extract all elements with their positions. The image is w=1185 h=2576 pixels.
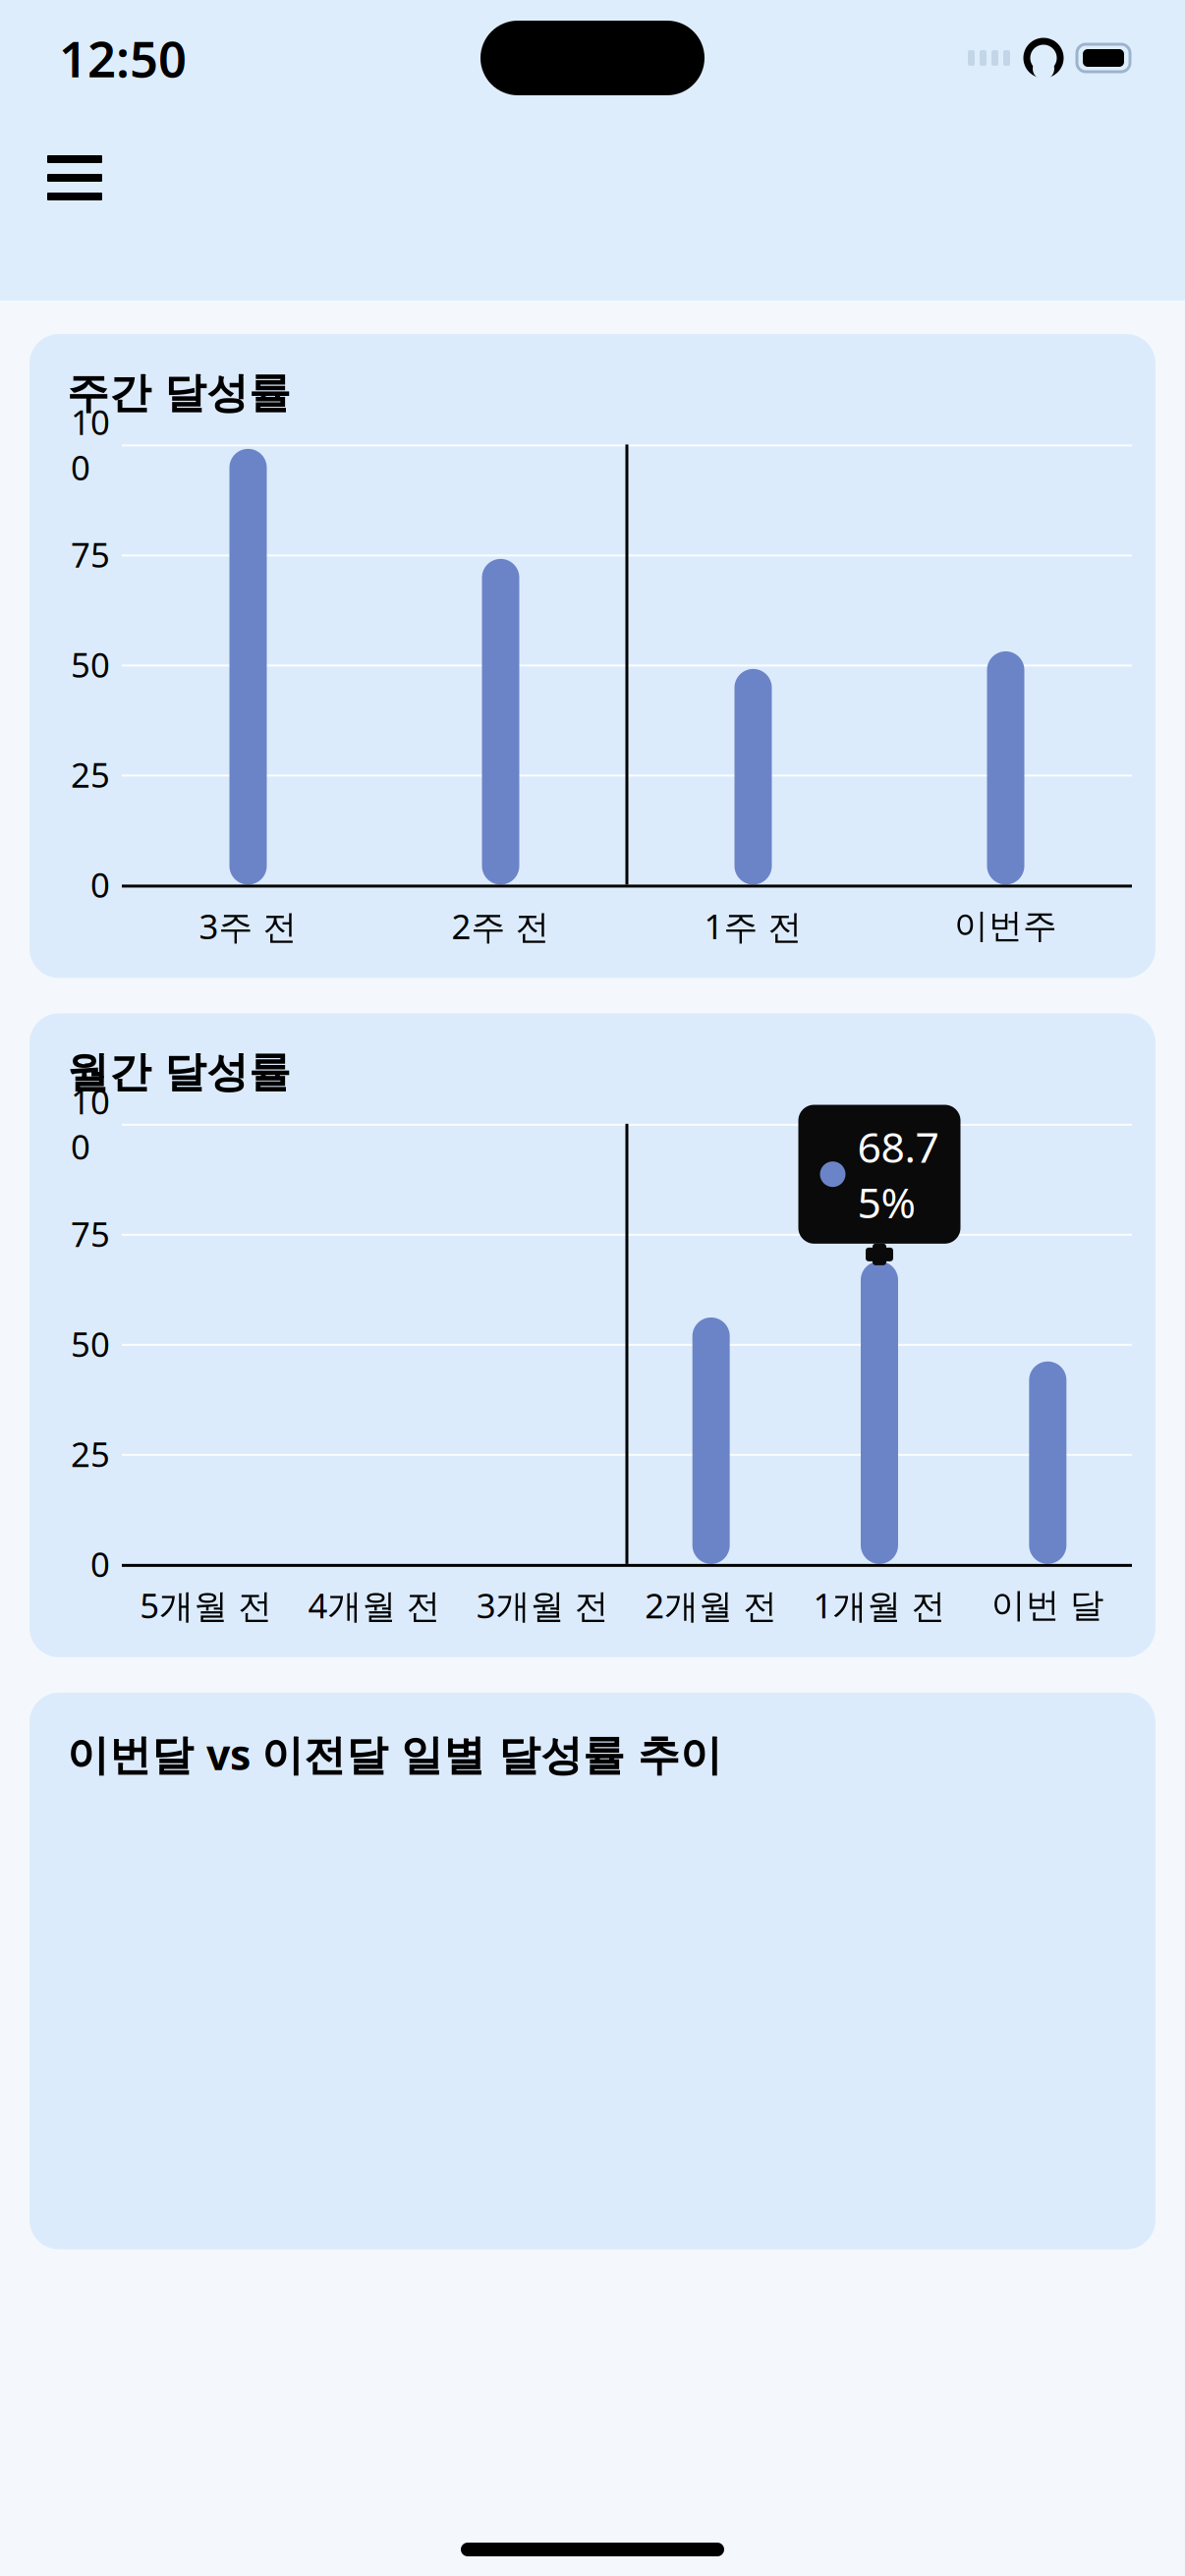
staticText: 4개월 전 xyxy=(308,1583,441,1628)
staticText: 68.75% xyxy=(857,1119,939,1230)
staticText: 1개월 전 xyxy=(813,1583,946,1628)
staticText: 0 xyxy=(90,862,110,907)
staticText: 이번 달 xyxy=(991,1584,1104,1626)
staticText: 25 xyxy=(71,752,110,797)
staticText: 1주 전 xyxy=(704,903,802,948)
staticText: 100 xyxy=(71,399,110,490)
staticText: 월간 달성률 xyxy=(67,1047,291,1098)
staticText: 50 xyxy=(71,642,110,687)
staticText: 3주 전 xyxy=(199,903,297,948)
staticText: 2개월 전 xyxy=(645,1583,777,1628)
staticText: 0 xyxy=(90,1541,110,1586)
staticText: 12:50 xyxy=(59,25,187,91)
staticText: 2주 전 xyxy=(451,903,550,948)
staticText: 3개월 전 xyxy=(476,1583,609,1628)
staticText: 50 xyxy=(71,1321,110,1366)
staticText: 주간 달성률 xyxy=(67,367,291,419)
staticText: 이번달 vs 이전달 일별 달성률 추이 xyxy=(67,1726,722,1782)
staticText: 이번주 xyxy=(954,905,1057,947)
staticText: 5개월 전 xyxy=(140,1583,272,1628)
staticText: 75 xyxy=(71,1211,110,1256)
staticText: 75 xyxy=(71,532,110,577)
button[interactable]: Menu xyxy=(29,138,120,218)
staticText: 25 xyxy=(71,1431,110,1476)
staticText: 100 xyxy=(71,1079,110,1169)
